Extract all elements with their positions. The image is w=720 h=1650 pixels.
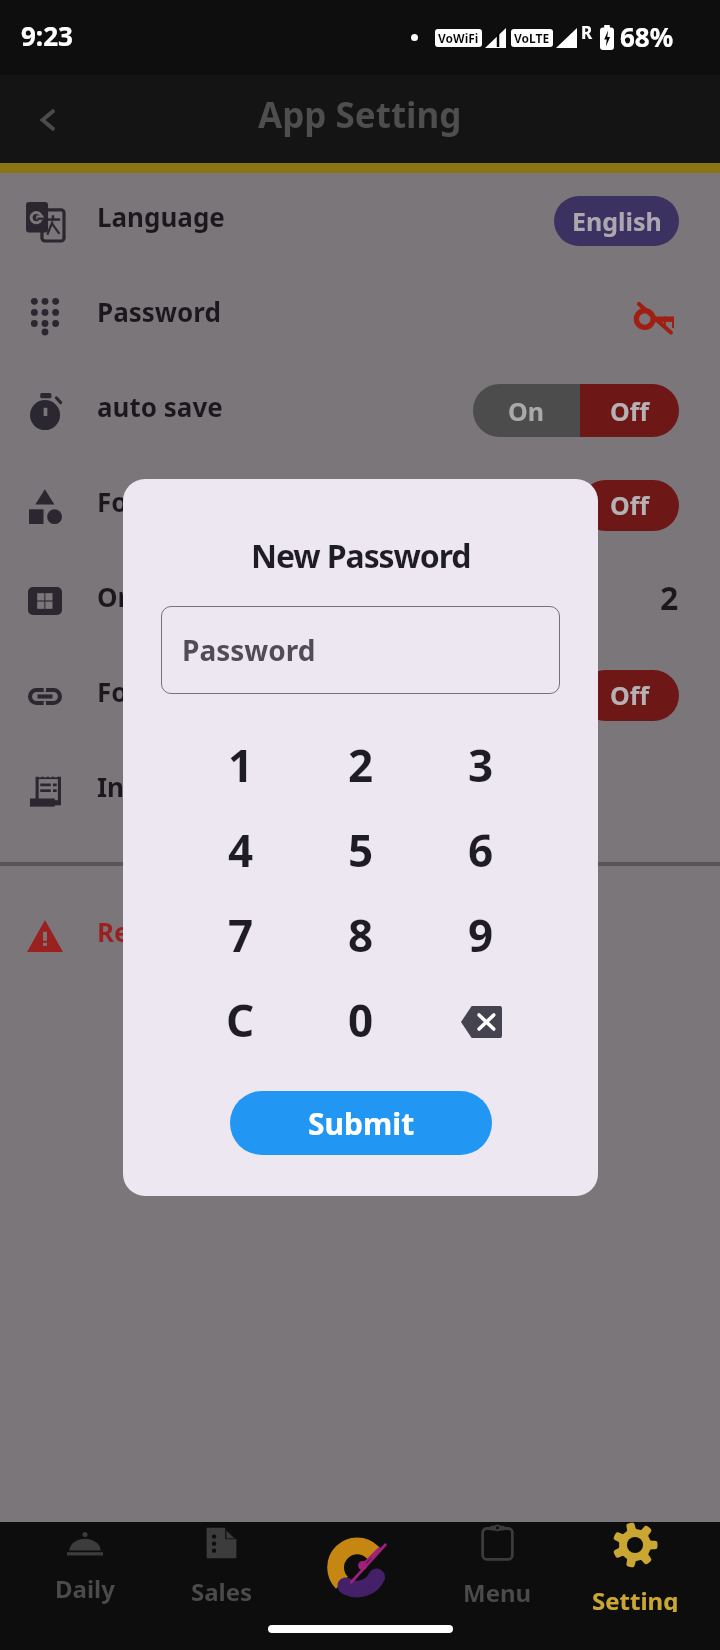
button[interactable]: Submit xyxy=(230,1091,492,1155)
staticText: VoLTE xyxy=(514,30,550,46)
staticText: Language xyxy=(97,199,225,234)
button[interactable]: Re xyxy=(0,888,720,983)
staticText: VoWiFi xyxy=(438,30,479,46)
staticText: Password xyxy=(97,294,221,329)
staticText: Off xyxy=(610,394,650,428)
button[interactable]: Fo xyxy=(0,648,720,743)
button[interactable]: Menu xyxy=(428,1522,566,1612)
staticText: 6 xyxy=(468,820,494,880)
staticText: Menu xyxy=(463,1576,532,1609)
button[interactable]: Off xyxy=(580,480,679,531)
staticText: On xyxy=(508,394,545,428)
staticText: C xyxy=(226,990,255,1050)
staticText: Fo xyxy=(97,484,128,519)
staticText: Daily xyxy=(55,1572,115,1605)
staticText: Or xyxy=(97,579,130,614)
staticText: Re xyxy=(97,914,130,949)
staticText: App Setting xyxy=(258,91,462,139)
staticText: 0 xyxy=(348,990,374,1050)
staticText: 68% xyxy=(620,19,674,54)
button[interactable]: Off xyxy=(580,670,679,721)
button[interactable]: Fo xyxy=(0,458,720,553)
button[interactable]: 3 xyxy=(402,724,560,809)
button[interactable]: 4 xyxy=(161,809,320,894)
staticText: auto save xyxy=(97,389,223,424)
button[interactable]: 9 xyxy=(402,894,560,979)
button[interactable]: Backspace xyxy=(402,979,560,1064)
staticText: 9 xyxy=(468,905,494,965)
button[interactable]: Back xyxy=(18,90,77,149)
button[interactable]: Password xyxy=(161,606,560,694)
staticText: Submit xyxy=(308,1103,415,1144)
button[interactable]: 1 xyxy=(161,724,320,809)
staticText: Fo xyxy=(97,674,128,709)
button[interactable]: Sales xyxy=(153,1522,290,1612)
button[interactable]: Language xyxy=(0,173,720,268)
staticText: Setting xyxy=(592,1584,679,1612)
staticText: 3 xyxy=(468,735,494,795)
staticText: 7 xyxy=(228,905,254,965)
button[interactable]: C xyxy=(161,979,320,1064)
staticText: Sales xyxy=(191,1575,253,1608)
button[interactable]: Password xyxy=(0,268,720,363)
button[interactable]: In xyxy=(0,743,720,838)
button[interactable] xyxy=(290,1522,428,1612)
button[interactable]: Or xyxy=(0,553,720,648)
button[interactable]: 5 xyxy=(320,809,402,894)
button[interactable]: Daily xyxy=(16,1522,153,1612)
staticText: New Password xyxy=(251,534,471,578)
staticText: 1 xyxy=(228,735,254,795)
staticText: Password xyxy=(182,631,316,669)
button[interactable]: On xyxy=(473,384,679,437)
button[interactable]: 7 xyxy=(161,894,320,979)
staticText: 5 xyxy=(348,820,374,880)
staticText: 2 xyxy=(660,576,679,620)
button[interactable]: 6 xyxy=(402,809,560,894)
staticText: 2 xyxy=(348,735,374,795)
staticText: 9:23 xyxy=(21,18,73,53)
staticText: R xyxy=(581,21,593,44)
staticText: 8 xyxy=(348,905,374,965)
other: Backspace xyxy=(461,1006,502,1038)
button[interactable]: English xyxy=(554,196,679,246)
button[interactable]: 0 xyxy=(320,979,402,1064)
button[interactable]: Show password xyxy=(629,291,679,341)
button[interactable]: auto save xyxy=(0,363,720,458)
staticText: Off xyxy=(610,488,650,522)
staticText: English xyxy=(572,204,662,238)
button[interactable]: Setting xyxy=(566,1522,704,1612)
button[interactable]: 2 xyxy=(320,724,402,809)
staticText: In xyxy=(97,769,125,804)
staticText: 4 xyxy=(228,820,254,880)
staticText: Off xyxy=(610,678,650,712)
button[interactable]: 8 xyxy=(320,894,402,979)
